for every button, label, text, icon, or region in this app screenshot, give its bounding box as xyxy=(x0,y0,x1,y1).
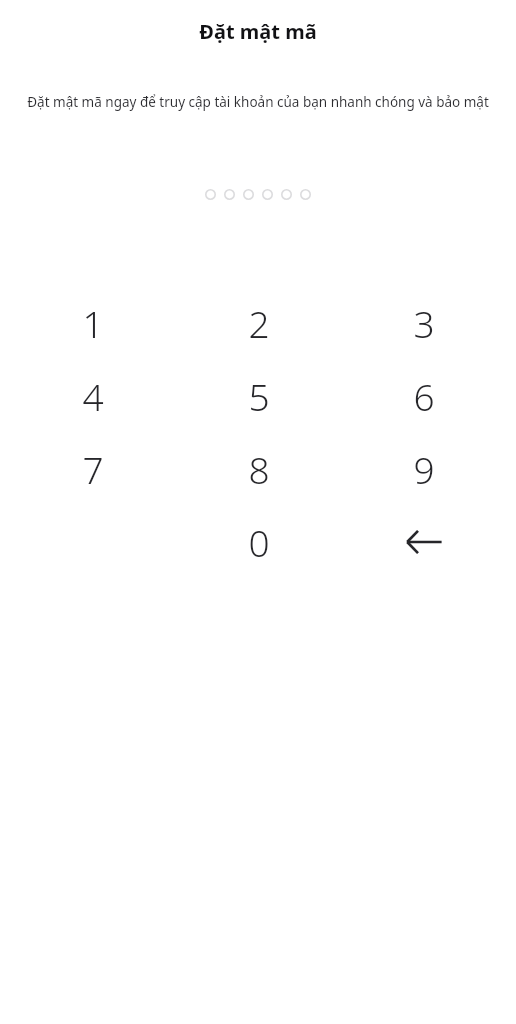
button[interactable]: 6 xyxy=(341,359,506,432)
button[interactable]: 3 xyxy=(341,286,506,359)
staticText: 0 xyxy=(248,517,270,567)
staticText: 3 xyxy=(413,298,435,348)
button[interactable]: 7 xyxy=(10,432,176,505)
button[interactable]: 0 xyxy=(176,505,341,578)
button[interactable]: 1 xyxy=(10,286,176,359)
button[interactable]: 9 xyxy=(341,432,506,505)
button[interactable]: 2 xyxy=(176,286,341,359)
button[interactable]: Backspace xyxy=(341,505,506,578)
button[interactable]: 4 xyxy=(10,359,176,432)
staticText: 8 xyxy=(248,444,270,494)
button[interactable]: 5 xyxy=(176,359,341,432)
staticText: Đặt mật mã xyxy=(199,18,317,45)
staticText: 5 xyxy=(248,371,270,421)
staticText: 9 xyxy=(413,444,435,494)
button[interactable]: 8 xyxy=(176,432,341,505)
staticText: 6 xyxy=(413,371,435,421)
staticText: Đặt mật mã ngay để truy cập tài khoản củ… xyxy=(22,93,494,111)
staticText: 1 xyxy=(82,298,104,348)
staticText: 4 xyxy=(82,371,104,421)
staticText: 2 xyxy=(248,298,270,348)
staticText: 7 xyxy=(82,444,104,494)
